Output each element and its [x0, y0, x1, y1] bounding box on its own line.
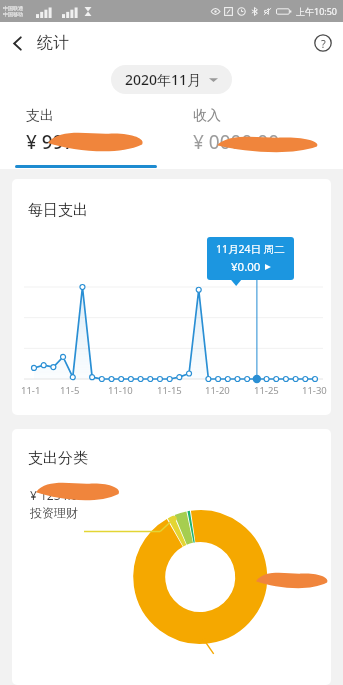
staticText: 支出	[26, 107, 54, 125]
staticText: ¥ 1234.00	[30, 487, 85, 503]
staticText: 11-25	[254, 384, 279, 397]
button[interactable]: 2020年11月	[111, 65, 232, 94]
button[interactable]: 每日支出	[12, 179, 331, 415]
button[interactable]: Help	[303, 23, 343, 63]
button[interactable]: 收入	[171, 101, 343, 169]
staticText: ¥0.00	[231, 259, 261, 275]
staticText: 中国移动	[3, 11, 23, 17]
staticText: 收入	[193, 107, 221, 125]
staticText: 11-15	[157, 384, 182, 397]
staticText: 11-5	[60, 384, 80, 397]
staticText: 2020年11月	[125, 70, 202, 89]
staticText: 每日支出	[28, 201, 88, 220]
staticText: 支出分类	[28, 449, 88, 468]
staticText: ¥ 0000.00	[193, 129, 280, 155]
button[interactable]: 11月24日 周二	[207, 237, 294, 280]
button[interactable]: Back	[0, 25, 33, 62]
button[interactable]: 支出分类	[12, 429, 331, 685]
staticText: ¥ 997.63	[26, 129, 102, 155]
staticText: 11-10	[108, 384, 133, 397]
staticText: 上午10:50	[296, 5, 338, 17]
staticText: 11-30	[302, 384, 327, 397]
button[interactable]: 支出	[0, 101, 171, 169]
staticText: 11月24日 周二	[216, 242, 285, 256]
staticText: 投资理财	[30, 505, 78, 520]
staticText: ?	[321, 36, 326, 51]
staticText: 11-1	[21, 384, 41, 397]
staticText: 统计	[37, 33, 69, 53]
staticText: 中国联通	[3, 5, 23, 11]
staticText: 11-20	[205, 384, 230, 397]
